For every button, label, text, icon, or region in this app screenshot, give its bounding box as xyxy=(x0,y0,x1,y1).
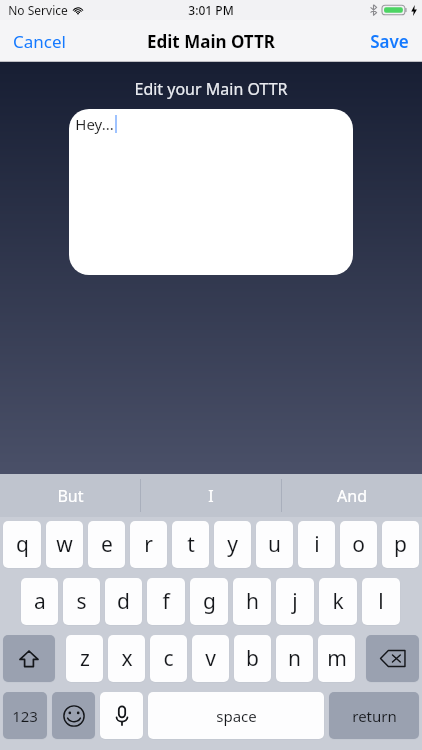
staticText: n xyxy=(288,644,301,673)
staticText: And xyxy=(337,485,367,507)
button[interactable]: q xyxy=(3,521,41,568)
button[interactable]: h xyxy=(233,578,271,625)
staticText: i xyxy=(314,530,320,559)
button[interactable]: d xyxy=(105,578,142,625)
button[interactable]: c xyxy=(150,635,187,682)
staticText: u xyxy=(268,530,281,559)
button[interactable]: k xyxy=(319,578,357,625)
button[interactable]: v xyxy=(192,635,229,682)
button[interactable]: Emoji xyxy=(52,692,95,739)
staticText: Hey... xyxy=(75,114,114,134)
button[interactable]: g xyxy=(190,578,228,625)
button[interactable]: t xyxy=(172,521,209,568)
staticText: I xyxy=(208,485,214,507)
button[interactable]: m xyxy=(318,635,355,682)
button[interactable]: Shift xyxy=(3,635,55,682)
button[interactable]: z xyxy=(66,635,103,682)
staticText: s xyxy=(76,587,87,616)
staticText: t xyxy=(187,530,195,559)
staticText: No Service xyxy=(8,2,68,18)
staticText: f xyxy=(162,587,170,616)
button[interactable]: j xyxy=(276,578,314,625)
button[interactable]: x xyxy=(108,635,145,682)
staticText: x xyxy=(121,644,133,673)
staticText: a xyxy=(34,587,46,616)
staticText: z xyxy=(80,644,90,673)
staticText: Cancel xyxy=(13,30,66,53)
button[interactable]: Backspace xyxy=(366,635,419,682)
staticText: c xyxy=(163,644,174,673)
button[interactable]: l xyxy=(362,578,400,625)
button[interactable]: w xyxy=(46,521,83,568)
button[interactable]: I xyxy=(141,474,281,517)
staticText: l xyxy=(378,587,384,616)
button[interactable]: u xyxy=(256,521,293,568)
button[interactable]: b xyxy=(234,635,271,682)
staticText: k xyxy=(332,587,344,616)
button[interactable]: y xyxy=(214,521,251,568)
staticText: Save xyxy=(370,30,409,53)
staticText: But xyxy=(57,485,84,507)
button[interactable]: return xyxy=(329,692,419,739)
staticText: b xyxy=(246,644,259,673)
staticText: Edit Main OTTR xyxy=(147,30,275,53)
staticText: space xyxy=(216,706,257,726)
button[interactable]: Hey... xyxy=(69,109,353,275)
button[interactable]: a xyxy=(21,578,58,625)
button[interactable]: Cancel xyxy=(0,20,79,62)
staticText: 123 xyxy=(12,706,38,726)
button[interactable]: p xyxy=(382,521,419,568)
button[interactable]: And xyxy=(282,474,422,517)
staticText: return xyxy=(352,706,397,726)
staticText: d xyxy=(117,587,130,616)
button[interactable]: Dictation xyxy=(100,692,143,739)
staticText: o xyxy=(352,530,365,559)
button[interactable]: i xyxy=(298,521,335,568)
button[interactable]: f xyxy=(147,578,185,625)
staticText: 3:01 PM xyxy=(188,2,234,18)
staticText: Edit your Main OTTR xyxy=(134,78,288,100)
staticText: q xyxy=(16,530,29,559)
staticText: v xyxy=(205,644,216,673)
button[interactable]: s xyxy=(63,578,100,625)
button[interactable]: n xyxy=(276,635,313,682)
staticText: e xyxy=(101,530,113,559)
button[interactable]: space xyxy=(148,692,324,739)
staticText: h xyxy=(246,587,259,616)
button[interactable]: o xyxy=(340,521,377,568)
button[interactable]: Save xyxy=(357,20,422,62)
staticText: y xyxy=(227,530,238,559)
staticText: j xyxy=(292,587,298,616)
staticText: r xyxy=(144,530,153,559)
staticText: p xyxy=(394,530,407,559)
button[interactable]: e xyxy=(88,521,125,568)
button[interactable]: 123 xyxy=(3,692,47,739)
button[interactable]: But xyxy=(0,474,140,517)
staticText: m xyxy=(327,644,347,673)
staticText: g xyxy=(203,587,216,616)
button[interactable]: r xyxy=(130,521,167,568)
staticText: w xyxy=(56,530,73,559)
